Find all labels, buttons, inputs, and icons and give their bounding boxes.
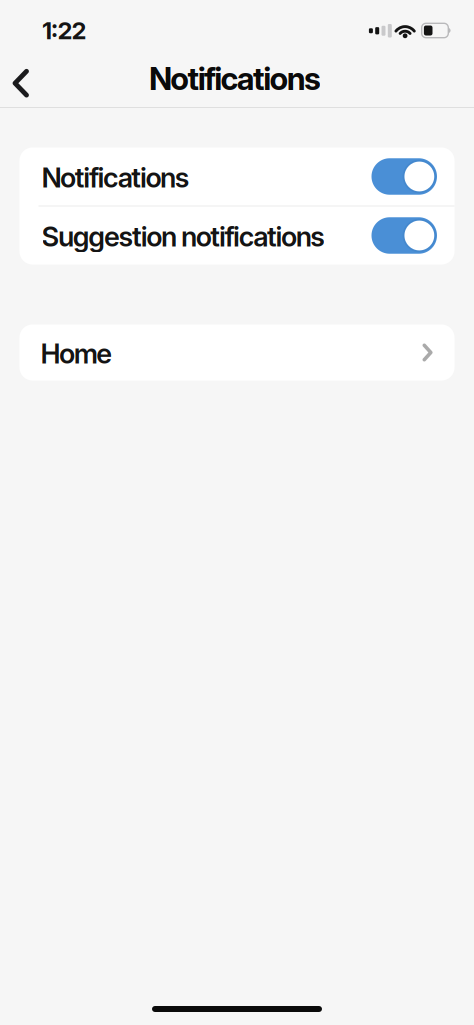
staticText: 1:22 <box>42 16 86 45</box>
staticText: Notifications <box>41 161 190 194</box>
staticText: Suggestion notifications <box>41 220 325 253</box>
staticText: Notifications <box>149 59 321 97</box>
button[interactable]: Back <box>0 66 32 96</box>
button[interactable]: Suggestion notifications <box>371 217 437 254</box>
staticText: Home <box>40 337 112 370</box>
button[interactable]: Home <box>19 324 454 380</box>
button[interactable]: Notifications <box>371 158 437 195</box>
